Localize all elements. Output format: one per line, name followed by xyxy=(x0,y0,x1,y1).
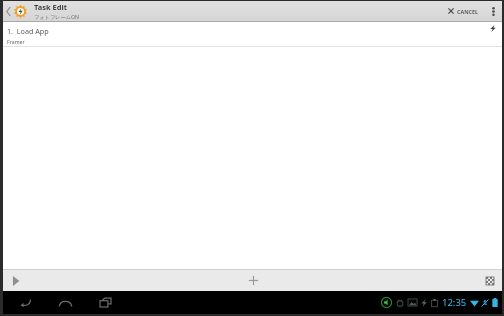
button[interactable]: Back xyxy=(11,291,39,314)
button[interactable]: Home xyxy=(51,291,79,314)
button[interactable]: Run task xyxy=(3,270,29,291)
staticText: フォトフレームON xyxy=(34,13,80,20)
button[interactable]: More options xyxy=(487,1,499,21)
button[interactable]: Navigate up xyxy=(5,1,29,21)
button[interactable]: CANCEL xyxy=(443,1,483,21)
staticText: Task Edit xyxy=(34,2,68,12)
button[interactable]: Recent apps xyxy=(91,291,119,314)
button[interactable]: Add action xyxy=(29,270,478,291)
button[interactable]: 1. Load App xyxy=(3,22,502,46)
staticText: Framer xyxy=(7,38,25,45)
staticText: 1. Load App xyxy=(7,26,49,36)
button[interactable]: Grid view xyxy=(478,270,502,291)
staticText: CANCEL xyxy=(457,8,479,15)
button[interactable]: Action condition xyxy=(484,22,502,46)
staticText: 12:35 xyxy=(442,296,467,309)
